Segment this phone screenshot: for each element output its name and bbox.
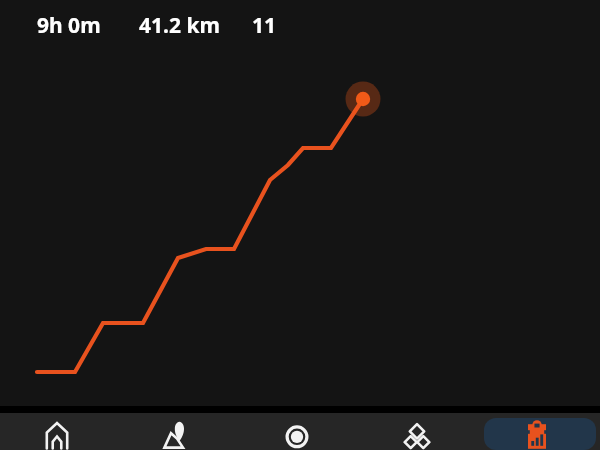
staticText: 11 (252, 11, 277, 40)
button[interactable]: Record (240, 413, 360, 450)
button[interactable]: Routes (360, 413, 480, 450)
button[interactable]: Map (120, 413, 240, 450)
button[interactable]: Activity log (480, 413, 600, 450)
button[interactable]: Home (0, 413, 120, 450)
staticText: 9h 0m (37, 11, 101, 40)
staticText: 41.2 km (139, 11, 220, 40)
